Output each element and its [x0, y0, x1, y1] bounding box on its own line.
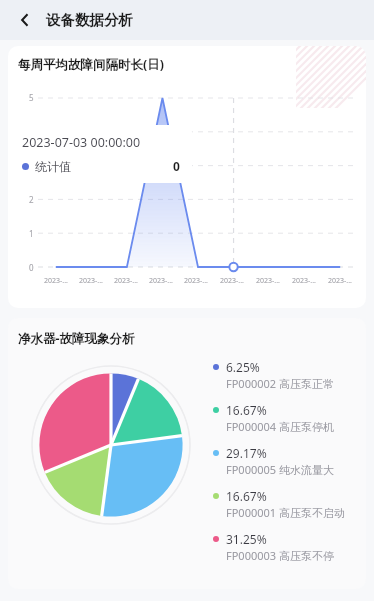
staticText: 2023-...: [292, 276, 316, 286]
button[interactable]: 6.25%: [213, 359, 366, 391]
staticText: 31.25%: [226, 531, 267, 547]
staticText: 每周平均故障间隔时长(日): [18, 56, 164, 73]
staticText: 净水器-故障现象分析: [18, 330, 135, 347]
staticText: FP000003 高压泵不停: [226, 548, 334, 563]
staticText: 16.67%: [226, 402, 267, 418]
staticText: FP000002 高压泵正常: [226, 376, 334, 391]
staticText: 2023-...: [79, 276, 103, 286]
staticText: 2023-...: [220, 276, 244, 286]
staticText: 0: [173, 158, 180, 174]
staticText: 2023-...: [328, 276, 352, 286]
staticText: 0: [29, 262, 34, 273]
staticText: 2023-07-03 00:00:00: [22, 134, 141, 151]
staticText: 2023-...: [256, 276, 280, 286]
staticText: 设备数据分析: [46, 11, 133, 29]
button[interactable]: Back: [8, 3, 42, 37]
staticText: FP000004 高压泵停机: [226, 419, 334, 434]
button[interactable]: 16.67%: [213, 488, 366, 520]
staticText: 2: [29, 194, 34, 205]
staticText: 统计值: [35, 159, 71, 174]
staticText: 1: [29, 228, 34, 239]
button[interactable]: 29.17%: [213, 445, 366, 477]
staticText: 16.67%: [226, 488, 267, 504]
staticText: 2023-...: [44, 276, 68, 286]
staticText: 2023-...: [184, 276, 208, 286]
button[interactable]: 净水器-故障现象分析: [8, 318, 366, 589]
staticText: 2023-...: [149, 276, 173, 286]
staticText: 6.25%: [226, 359, 260, 375]
staticText: FP000005 纯水流量大: [226, 462, 334, 477]
button[interactable]: 16.67%: [213, 402, 366, 434]
staticText: FP000001 高压泵不启动: [226, 505, 345, 520]
staticText: 5: [29, 92, 34, 103]
staticText: 2023-...: [114, 276, 138, 286]
button[interactable]: 31.25%: [213, 531, 366, 563]
button[interactable]: 每周平均故障间隔时长(日): [8, 46, 366, 308]
staticText: 29.17%: [226, 445, 267, 461]
